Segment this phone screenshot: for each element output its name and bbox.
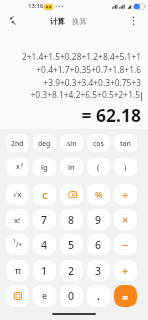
staticText: 6 [95,238,102,252]
button[interactable]: = [114,285,137,307]
button[interactable]: × [114,209,137,230]
staticText: ( [97,162,100,172]
button[interactable]: deg [33,134,56,152]
button[interactable]: − [114,234,137,255]
button[interactable]: 2nd [6,134,29,152]
staticText: ÷ [122,188,129,202]
staticText: % [95,189,103,201]
button[interactable]: cos [87,134,110,152]
button[interactable]: ) [114,158,137,176]
button[interactable]: 8 [60,209,83,230]
staticText: deg [38,139,51,148]
staticText: tan [120,139,131,148]
button[interactable]: π [6,260,29,281]
staticText: 9 [95,213,102,227]
button[interactable]: ( [87,158,110,176]
button[interactable]: 计算 [46,15,68,28]
staticText: 7 [41,213,48,227]
staticText: = [122,289,129,304]
staticText: 3 [95,264,102,278]
staticText: C [42,189,48,201]
staticText: ln [68,162,75,172]
staticText: 计算 [50,17,65,26]
staticText: + [122,264,129,278]
staticText: lg [41,162,48,172]
staticText: 8 [68,213,75,227]
button[interactable]: ÷ [114,184,137,205]
button[interactable]: sin [60,134,83,152]
button[interactable]: e [33,285,56,307]
button[interactable]: lg [33,158,56,176]
button[interactable]: 6 [87,234,110,255]
staticText: 13:16 [28,2,44,10]
button[interactable]: 1 [6,234,29,255]
button[interactable]: 5 [60,234,83,255]
staticText: π [15,265,21,277]
staticText: 1 [41,264,48,278]
staticText: +0.3+8.1+4.2+6.5+0.5+2+1.5 [0,89,140,100]
button[interactable] [60,184,83,205]
staticText: × [122,213,129,227]
button[interactable]: 换算 [68,15,90,28]
staticText: +0.4+1.7+0.35+0.7+1.8+1.6 [0,64,141,75]
staticText: cos [93,139,104,148]
staticText: 2+1.4+1.5+0.28+1.2+8.4+5.1+1 [0,51,141,62]
staticText: 2nd [11,139,24,148]
button[interactable]: % [87,184,110,205]
button[interactable]: x [6,158,29,176]
button[interactable]: √x [6,184,29,205]
staticText: − [122,238,129,252]
staticText: 1 [13,238,16,245]
button[interactable]: 1 [33,260,56,281]
button[interactable] [128,14,139,28]
staticText: 2 [68,264,75,278]
button[interactable]: 7 [33,209,56,230]
button[interactable]: ln [60,158,83,176]
button[interactable] [4,14,18,27]
button[interactable] [6,285,29,307]
staticText: . [97,289,100,303]
button[interactable]: 4 [33,234,56,255]
button[interactable]: 3 [87,260,110,281]
staticText: x [16,162,20,172]
staticText: sin [67,139,77,148]
button[interactable]: C [33,184,56,205]
staticText: x [19,241,22,248]
staticText: / [16,240,19,249]
staticText: √x [13,190,22,200]
staticText: = 62.18 [0,103,141,127]
button[interactable]: . [87,285,110,307]
button[interactable]: 2 [60,260,83,281]
staticText: 0 [68,289,75,303]
staticText: 4 [41,238,48,252]
staticText: ) [124,162,127,172]
button[interactable]: 9 [87,209,110,230]
button[interactable]: 0 [60,285,83,307]
button[interactable]: + [114,260,137,281]
staticText: y [21,161,24,167]
button[interactable]: x! [6,209,29,230]
staticText: e [42,290,47,302]
button[interactable]: tan [114,134,137,152]
staticText: +3.9+0.3+3.4+0.3+0.75+3 [0,77,141,88]
staticText: 换算 [72,17,87,26]
staticText: x! [14,215,21,225]
staticText: 5 [68,238,75,252]
